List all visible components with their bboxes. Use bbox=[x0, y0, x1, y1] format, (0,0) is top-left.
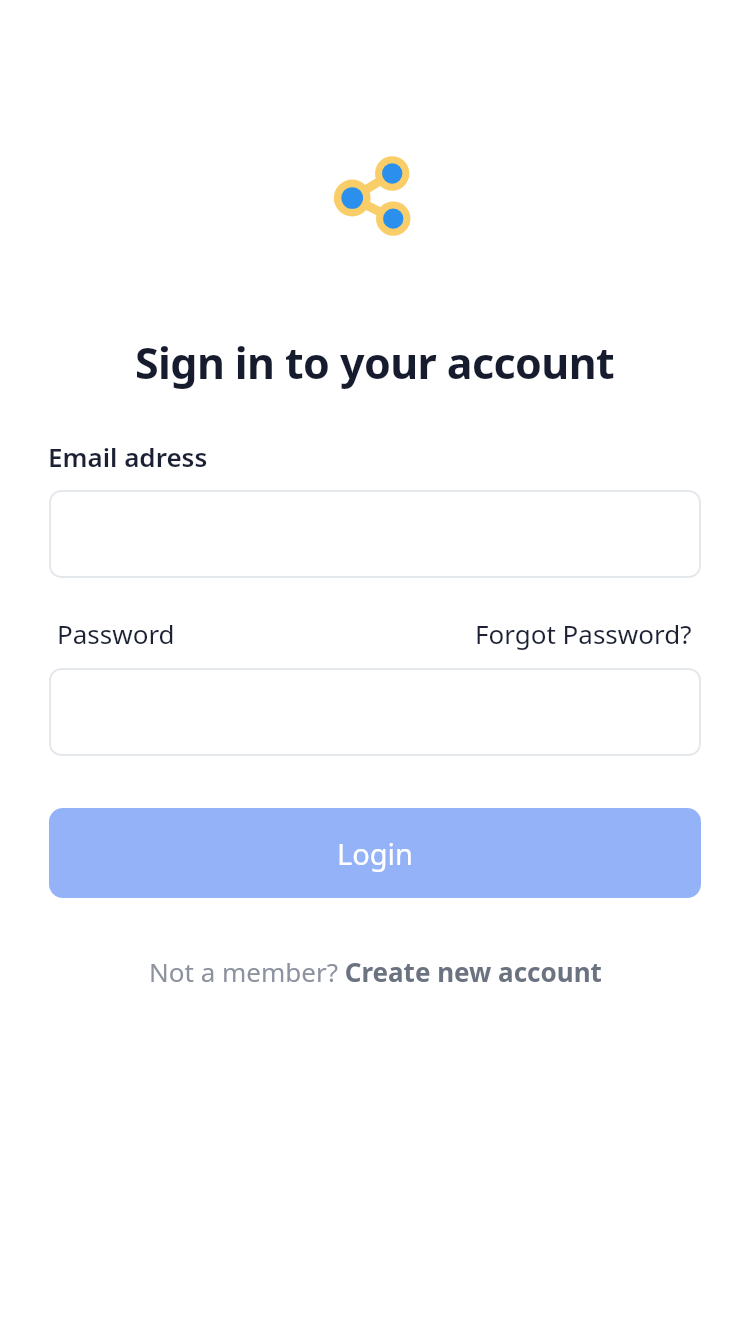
staticText: Password bbox=[57, 616, 175, 651]
button[interactable]: Password bbox=[57, 616, 175, 651]
button[interactable] bbox=[49, 668, 701, 756]
staticText: Sign in to your account bbox=[135, 333, 615, 392]
button[interactable]: Login bbox=[49, 808, 701, 898]
staticText: Email adress bbox=[48, 439, 208, 474]
button[interactable]: Forgot Password? bbox=[475, 616, 692, 651]
button[interactable]: Not a member? Create new account bbox=[149, 954, 602, 989]
other: App logo bbox=[332, 155, 418, 241]
button[interactable] bbox=[49, 490, 701, 578]
staticText: Login bbox=[337, 834, 413, 873]
staticText: Forgot Password? bbox=[475, 616, 692, 651]
staticText: Not a member? Create new account bbox=[149, 954, 602, 989]
